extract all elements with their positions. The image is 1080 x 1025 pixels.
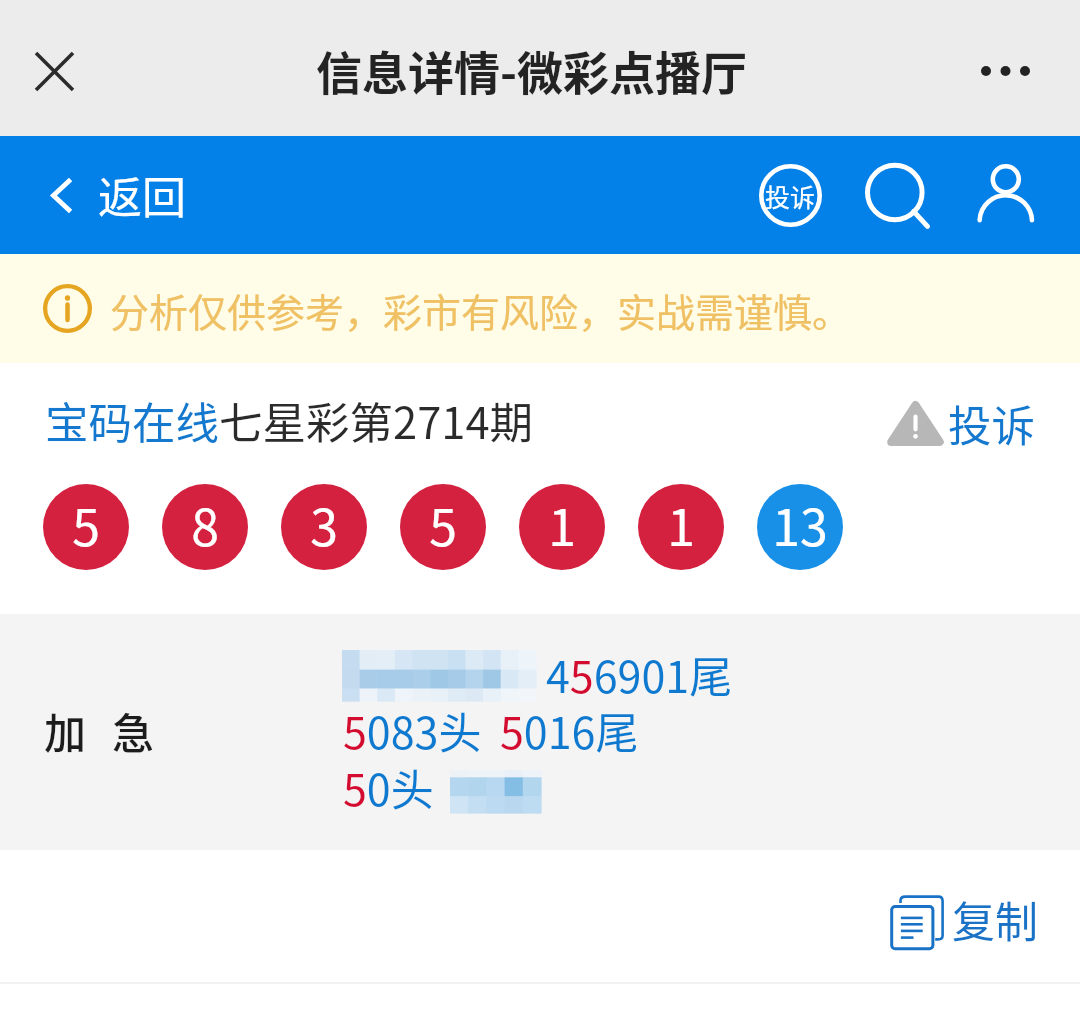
button[interactable]: Search bbox=[862, 161, 934, 233]
button[interactable]: Profile bbox=[975, 154, 1037, 216]
staticText: 5 bbox=[429, 488, 457, 560]
staticText: 456901尾 bbox=[546, 643, 733, 705]
button[interactable]: 8 bbox=[162, 484, 248, 570]
button[interactable]: 5 bbox=[400, 484, 486, 570]
staticText: 1 bbox=[548, 488, 576, 560]
staticText: 5 bbox=[72, 488, 100, 560]
staticText: 分析仅供参考，彩市有风险，实战需谨慎。 bbox=[110, 282, 852, 338]
staticText: 50头 bbox=[343, 756, 434, 818]
button[interactable]: 3 bbox=[281, 484, 367, 570]
button[interactable]: 1 bbox=[519, 484, 605, 570]
button[interactable]: More options bbox=[962, 28, 1048, 114]
staticText: 宝码在线七星彩第2714期 bbox=[45, 389, 534, 452]
button[interactable]: 投诉 bbox=[888, 392, 1035, 455]
staticText: 急 bbox=[112, 700, 155, 761]
staticText: 5016尾 bbox=[500, 699, 639, 761]
staticText: 5083头 bbox=[343, 699, 482, 761]
button[interactable]: 复制 bbox=[890, 892, 1038, 954]
button[interactable]: 返回 bbox=[51, 163, 186, 227]
staticText: 1 bbox=[667, 488, 695, 560]
staticText: 信息详情-微彩点播厅 bbox=[316, 37, 748, 104]
button[interactable]: 投诉 bbox=[759, 164, 822, 227]
button[interactable]: Close bbox=[16, 33, 92, 109]
staticText: 返回 bbox=[98, 163, 186, 227]
staticText: 13 bbox=[772, 488, 828, 560]
button[interactable]: 13 bbox=[757, 484, 843, 570]
button[interactable]: 1 bbox=[638, 484, 724, 570]
staticText: 3 bbox=[310, 488, 338, 560]
staticText: 8 bbox=[191, 488, 219, 560]
staticText: 加 bbox=[44, 700, 87, 761]
button[interactable]: 5 bbox=[43, 484, 129, 570]
staticText: 投诉 bbox=[948, 392, 1035, 455]
staticText: 复制 bbox=[952, 888, 1038, 950]
staticText: 投诉 bbox=[765, 178, 816, 214]
